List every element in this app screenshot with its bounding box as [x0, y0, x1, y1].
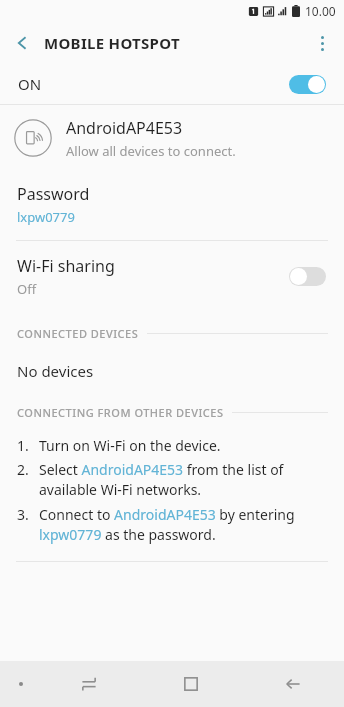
staticText: MOBILE HOTSPOT [44, 33, 180, 53]
staticText: Connect to AndroidAP4E53 by entering lxp… [39, 505, 328, 545]
staticText: 1. [17, 436, 29, 455]
staticText: 3. [17, 505, 29, 524]
staticText: No devices [17, 361, 94, 381]
button[interactable]: ON [0, 64, 344, 104]
staticText: ON [18, 74, 289, 94]
button[interactable]: More options [300, 22, 344, 64]
staticText: 10.00 [305, 3, 336, 19]
button[interactable]: Back [0, 22, 44, 64]
button[interactable]: Back [242, 661, 344, 707]
button[interactable]: Recents [38, 661, 140, 707]
staticText: Off [17, 280, 37, 298]
staticText: Allow all devices to connect. [66, 142, 236, 160]
staticText: Select AndroidAP4E53 from the list of av… [39, 460, 328, 500]
staticText: Wi-Fi sharing [17, 255, 115, 277]
staticText: CONNECTED DEVICES [17, 326, 139, 341]
staticText: AndroidAP4E53 [66, 117, 183, 139]
staticText: 2. [17, 460, 29, 479]
staticText: Turn on Wi-Fi on the device. [39, 436, 221, 455]
staticText: CONNECTING FROM OTHER DEVICES [17, 405, 224, 420]
button[interactable]: AndroidAP4E53 [0, 105, 344, 171]
button[interactable]: Wi-Fi sharing [0, 241, 344, 312]
staticText: Password [17, 183, 90, 205]
button[interactable]: Password [0, 171, 344, 240]
button[interactable]: Home [140, 661, 242, 707]
staticText: lxpw0779 [17, 208, 75, 226]
